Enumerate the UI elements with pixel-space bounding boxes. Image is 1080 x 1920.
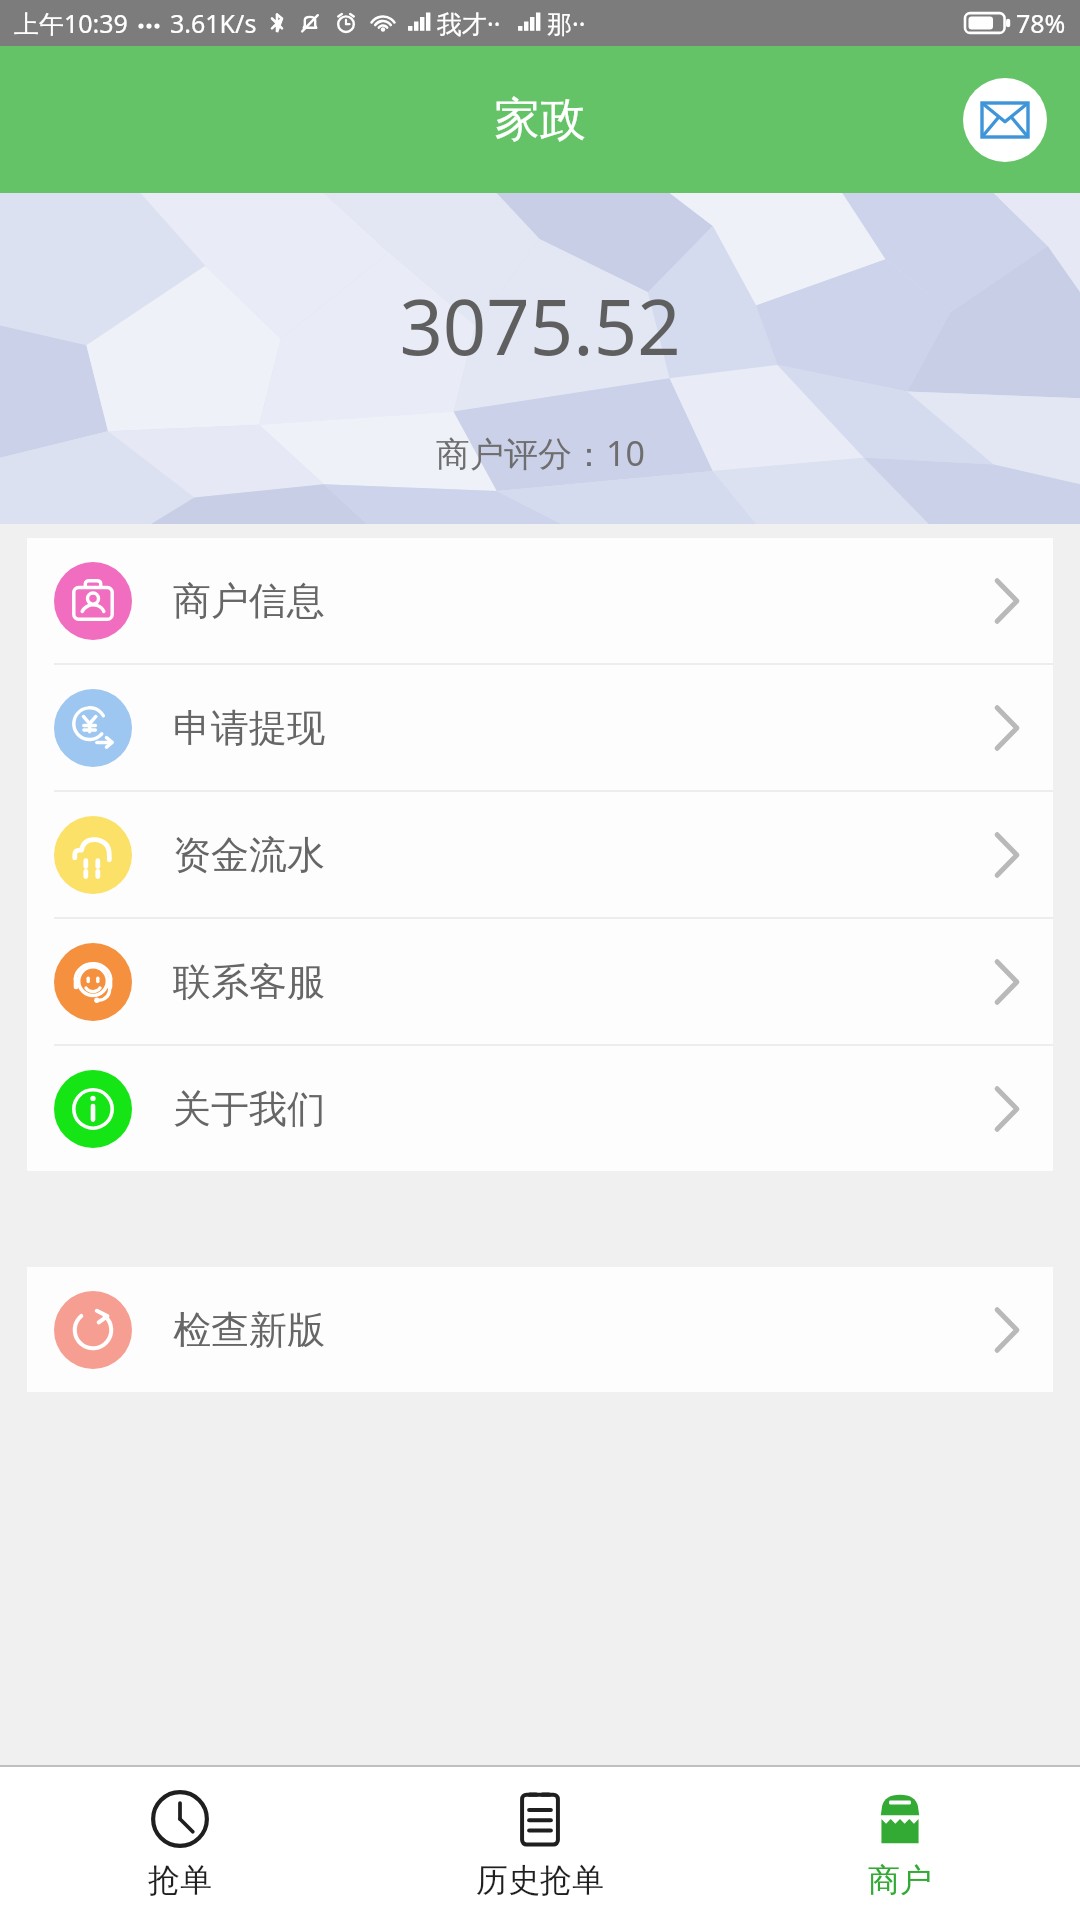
staticText: 商户信息 — [173, 577, 325, 625]
button[interactable]: 检查新版 — [27, 1267, 1053, 1392]
staticText: 上午10:39 — [14, 6, 128, 40]
staticText: 历史抢单 — [476, 1860, 604, 1900]
button[interactable]: 商户信息 — [27, 538, 1053, 663]
staticText: 商户 — [868, 1860, 932, 1900]
staticText: 申请提现 — [173, 704, 325, 752]
button[interactable]: 申请提现 — [27, 665, 1053, 790]
button[interactable]: 抢单 — [0, 1787, 360, 1900]
staticText: 商户评分：10 — [436, 430, 645, 476]
button[interactable]: 历史抢单 — [360, 1787, 720, 1900]
staticText: 3.61K/s — [170, 6, 257, 40]
staticText: 78% — [1016, 6, 1066, 40]
staticText: 抢单 — [148, 1860, 212, 1900]
staticText: 3075.52 — [399, 274, 681, 378]
staticText: 联系客服 — [173, 958, 325, 1006]
button[interactable]: 资金流水 — [27, 792, 1053, 917]
button[interactable]: 关于我们 — [27, 1046, 1053, 1171]
staticText: 关于我们 — [173, 1085, 325, 1133]
staticText: 我才·· — [437, 6, 501, 40]
button[interactable]: Messages — [963, 78, 1047, 162]
staticText: 那·· — [547, 6, 586, 40]
button[interactable]: 联系客服 — [27, 919, 1053, 1044]
staticText: 检查新版 — [173, 1306, 325, 1354]
staticText: 资金流水 — [173, 831, 325, 879]
staticText: 家政 — [494, 91, 586, 149]
button[interactable]: 商户 — [720, 1787, 1080, 1900]
